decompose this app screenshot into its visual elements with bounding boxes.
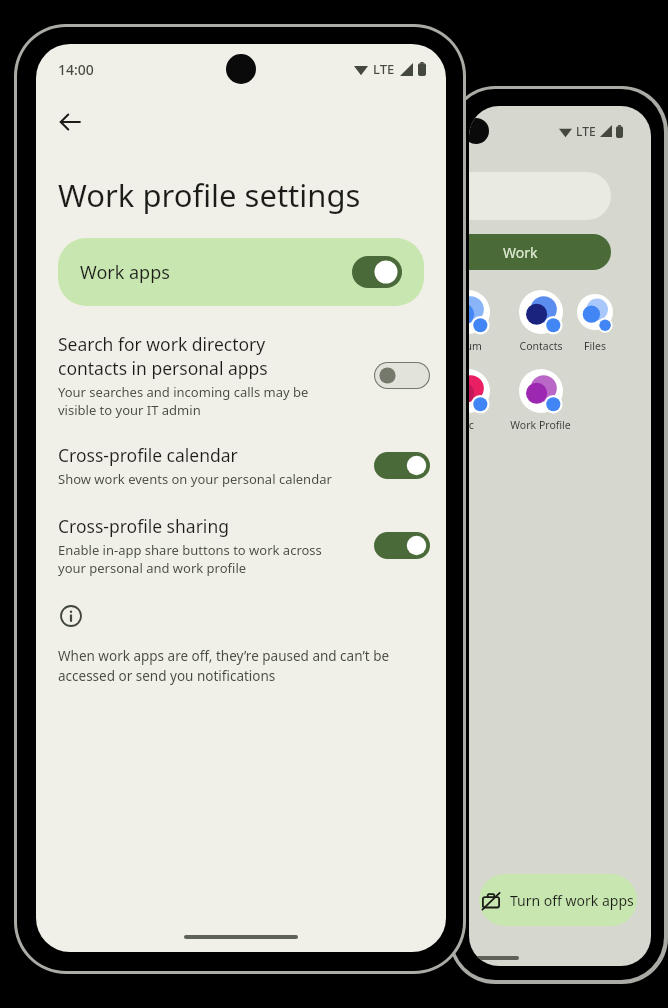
staticText: sic — [469, 418, 474, 432]
staticText: Cross-profile calendar — [58, 443, 238, 467]
button[interactable]: mium — [469, 290, 504, 353]
staticText: Files — [584, 339, 606, 353]
staticText: 14:00 — [58, 60, 94, 79]
button[interactable]: Work apps — [58, 238, 424, 306]
button[interactable]: Cross-profile calendar — [36, 443, 446, 488]
button[interactable]: Back — [46, 98, 94, 146]
button[interactable]: Work — [469, 234, 611, 270]
button[interactable]: Work Profile — [504, 369, 577, 432]
staticText: Your searches and incoming calls may be … — [58, 383, 309, 419]
button[interactable]: Toggle off — [374, 362, 430, 389]
staticText: mium — [469, 339, 482, 353]
staticText: Show work events on your personal calend… — [58, 470, 332, 488]
button[interactable]: Cross-profile sharing — [36, 514, 446, 577]
button[interactable]: Toggle on — [352, 256, 402, 288]
button[interactable]: Contacts — [504, 290, 577, 353]
staticText: Work profile settings — [58, 174, 361, 216]
button[interactable]: Toggle on — [374, 532, 430, 559]
staticText: Work apps — [80, 260, 352, 285]
staticText: Work — [503, 243, 538, 262]
button[interactable]: Search for work directory contacts in pe… — [36, 332, 446, 419]
button[interactable]: sic — [469, 369, 504, 432]
staticText: Search for work directory contacts in pe… — [58, 332, 268, 380]
staticText: LTE — [373, 60, 395, 78]
button[interactable]: Search — [469, 172, 611, 220]
staticText: Contacts — [519, 339, 563, 353]
staticText: Cross-profile sharing — [58, 514, 229, 538]
staticText: Work Profile — [510, 418, 571, 432]
button[interactable]: Turn off work apps — [479, 874, 637, 926]
button[interactable]: Toggle on — [374, 452, 430, 479]
staticText: When work apps are off, they’re paused a… — [58, 647, 390, 685]
staticText: Enable in-app share buttons to work acro… — [58, 541, 322, 577]
staticText: LTE — [576, 123, 596, 139]
button[interactable]: Files — [577, 290, 613, 353]
staticText: Turn off work apps — [510, 891, 634, 910]
